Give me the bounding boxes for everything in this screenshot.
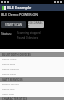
staticText: CHARACTERISTICS — [2, 97, 28, 100]
button[interactable]: Device Info — [0, 87, 64, 92]
button[interactable]: Device Alpha — [0, 57, 64, 62]
staticText: Found 0 devices — [17, 36, 39, 40]
staticText: Scanning stopped — [17, 31, 41, 35]
button[interactable]: Heart Rate — [0, 92, 64, 97]
staticText: START SCAN — [5, 23, 23, 27]
button[interactable]: START SCAN — [1, 21, 26, 28]
staticText: Device Gamma — [2, 67, 19, 70]
staticText: Device Info — [2, 87, 15, 90]
staticText: Battery Service — [2, 82, 19, 85]
staticText: Status: — [1, 31, 12, 36]
button[interactable]: Battery Service — [0, 82, 64, 87]
staticText: DISCONNECT — [28, 21, 44, 28]
staticText: GATT SERVICES — [2, 78, 23, 82]
staticText: Heart Rate — [2, 92, 14, 95]
button[interactable]: BLUETOOTH DEVICES — [0, 52, 64, 57]
staticText: Device Alpha — [2, 57, 17, 60]
staticText: BLE Example — [7, 5, 32, 10]
button[interactable]: GATT SERVICES — [0, 77, 64, 82]
button[interactable]: CHARACTERISTICS — [0, 97, 64, 100]
staticText: Device Beta — [2, 62, 16, 65]
staticText: Device Delta — [2, 72, 16, 75]
button[interactable]: Device Gamma — [0, 67, 64, 72]
staticText: BLE Demo — [1, 12, 19, 17]
staticText: POWER:ON — [19, 12, 39, 17]
button[interactable]: Device Beta — [0, 62, 64, 67]
button[interactable]: DISCONNECT — [28, 21, 44, 28]
button[interactable]: Device Delta — [0, 72, 64, 77]
staticText: BLUETOOTH DEVICES — [2, 53, 31, 57]
